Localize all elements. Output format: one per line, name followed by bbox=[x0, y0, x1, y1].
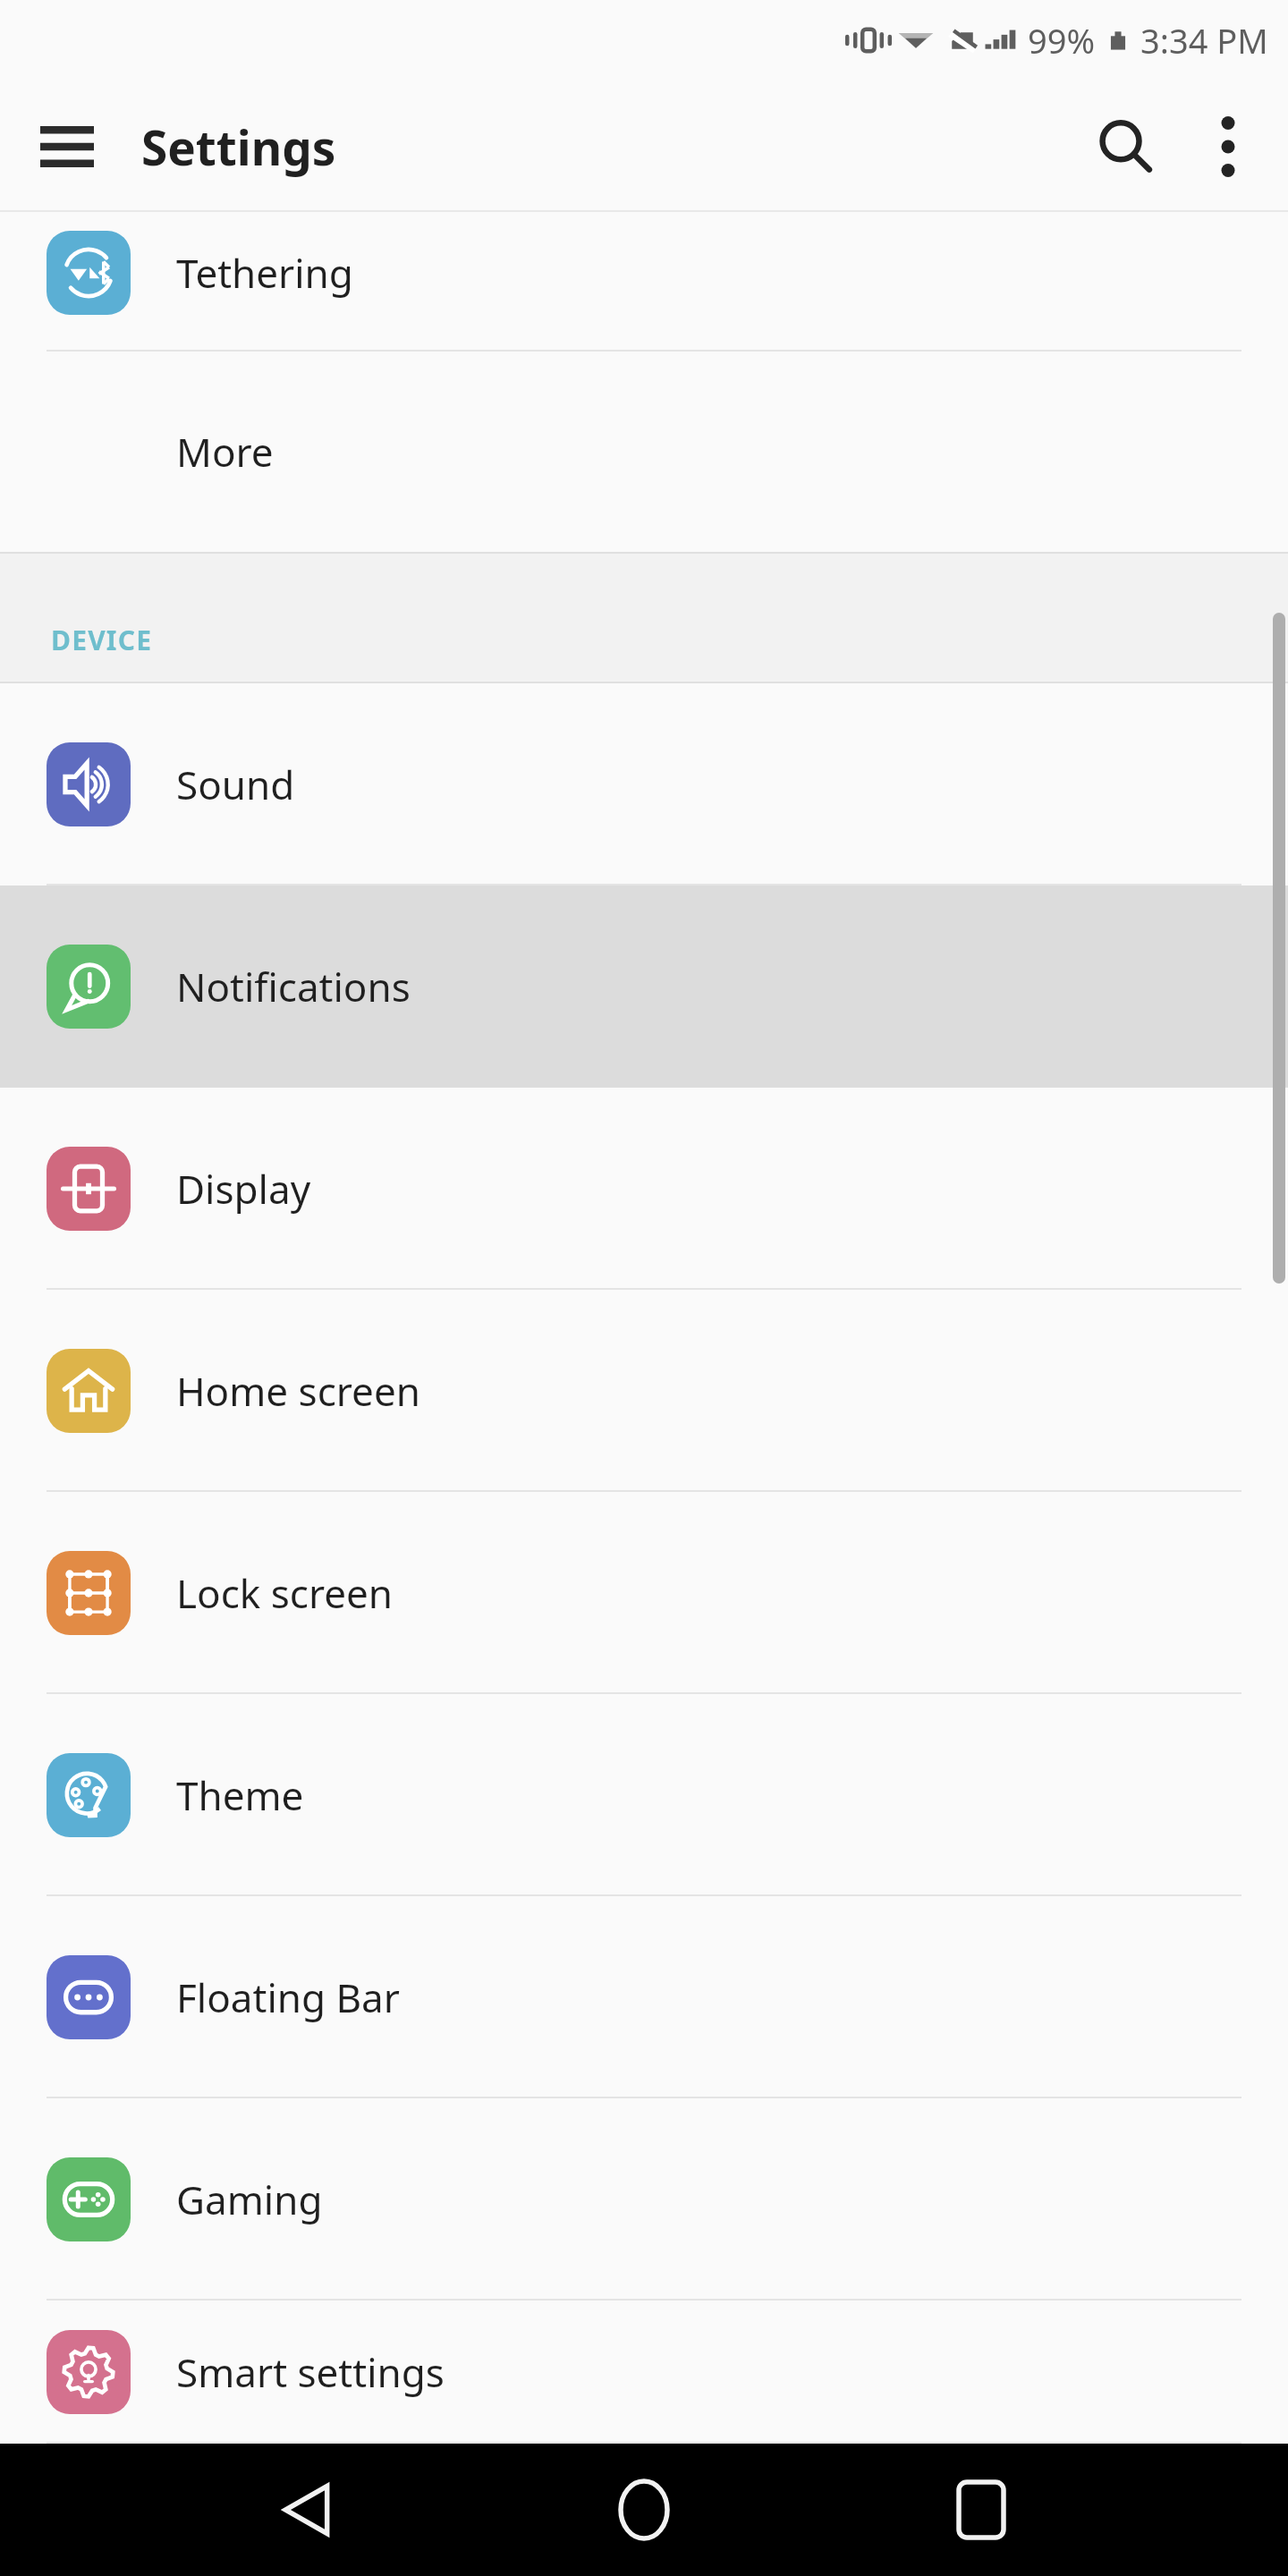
button[interactable]: More bbox=[0, 352, 1288, 552]
staticText: Lock screen bbox=[176, 1566, 394, 1620]
staticText: Notifications bbox=[176, 960, 411, 1013]
button[interactable]: Theme bbox=[0, 1694, 1288, 1896]
staticText: DEVICE bbox=[51, 622, 153, 658]
button[interactable]: Lock screen bbox=[0, 1492, 1288, 1694]
button[interactable]: Smart settings bbox=[0, 2301, 1288, 2444]
button[interactable]: Tethering bbox=[0, 212, 1288, 352]
button[interactable]: Sound bbox=[0, 683, 1288, 885]
button[interactable]: Home screen bbox=[0, 1290, 1288, 1492]
staticText: 99% bbox=[1028, 17, 1096, 64]
staticText: Settings bbox=[141, 114, 336, 179]
button[interactable]: Search bbox=[1072, 93, 1179, 200]
button[interactable]: Recent apps bbox=[914, 2444, 1048, 2576]
button[interactable]: Floating Bar bbox=[0, 1896, 1288, 2098]
staticText: Display bbox=[176, 1162, 311, 1216]
staticText: Tethering bbox=[176, 246, 353, 300]
staticText: Gaming bbox=[176, 2173, 323, 2226]
staticText: Sound bbox=[176, 758, 295, 811]
button[interactable]: Gaming bbox=[0, 2098, 1288, 2301]
button[interactable]: Home bbox=[577, 2444, 711, 2576]
button[interactable]: Open navigation menu bbox=[18, 97, 116, 196]
staticText: Home screen bbox=[176, 1364, 420, 1418]
button[interactable]: Display bbox=[0, 1088, 1288, 1290]
staticText: Smart settings bbox=[176, 2345, 445, 2399]
staticText: 3:34 PM bbox=[1140, 17, 1268, 64]
staticText: Floating Bar bbox=[176, 1970, 400, 2024]
button[interactable]: Back bbox=[240, 2444, 374, 2576]
button[interactable]: Notifications bbox=[0, 885, 1288, 1088]
staticText: Theme bbox=[176, 1768, 304, 1822]
button[interactable]: More options bbox=[1179, 97, 1277, 196]
staticText: More bbox=[176, 425, 274, 479]
